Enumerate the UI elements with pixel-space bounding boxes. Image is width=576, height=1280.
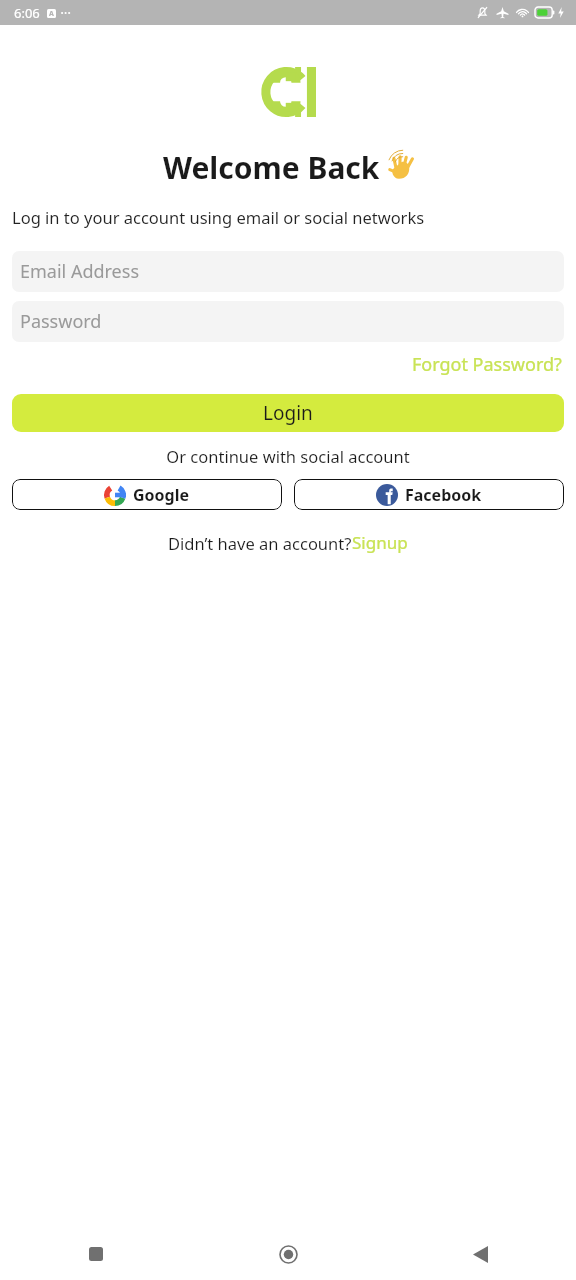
staticText: Login bbox=[263, 400, 313, 426]
staticText: Facebook bbox=[405, 484, 482, 506]
staticText: Welcome Back bbox=[163, 147, 380, 188]
button[interactable]: Login bbox=[12, 394, 564, 432]
button[interactable]: Home bbox=[192, 1228, 384, 1280]
staticText: 6:06 bbox=[14, 4, 40, 22]
staticText: Password bbox=[20, 309, 102, 334]
button[interactable]: Signup bbox=[352, 531, 408, 554]
button[interactable]: Email Address bbox=[12, 251, 564, 292]
button[interactable]: Password bbox=[12, 301, 564, 342]
button[interactable]: Recent apps bbox=[0, 1228, 192, 1280]
staticText: Log in to your account using email or so… bbox=[12, 206, 564, 228]
staticText: Or continue with social account bbox=[0, 445, 576, 467]
staticText: Google bbox=[133, 484, 190, 506]
staticText: Signup bbox=[352, 531, 408, 554]
button[interactable]: Google bbox=[12, 479, 282, 510]
staticText: Forgot Password? bbox=[412, 352, 562, 377]
button[interactable]: Back bbox=[384, 1228, 576, 1280]
staticText: Didn’t have an account? bbox=[168, 532, 352, 554]
button[interactable]: Forgot Password? bbox=[410, 349, 564, 380]
button[interactable]: Facebook bbox=[294, 479, 564, 510]
staticText: Email Address bbox=[20, 259, 140, 284]
staticText: A bbox=[49, 9, 54, 18]
